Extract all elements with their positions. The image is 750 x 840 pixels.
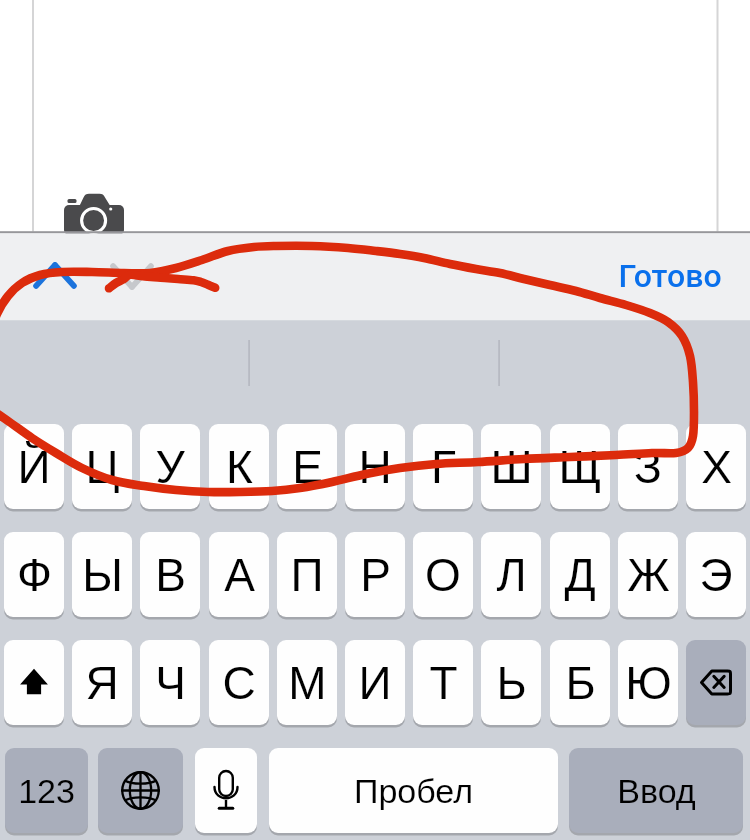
staticText: 123	[18, 772, 75, 810]
button[interactable]: Change language	[98, 748, 183, 833]
button[interactable]: Д	[550, 532, 610, 617]
button[interactable]: Л	[481, 532, 541, 617]
staticText: Д	[564, 549, 596, 600]
button[interactable]: Dictation	[195, 748, 257, 833]
button[interactable]: Ж	[618, 532, 678, 617]
staticText: Т	[429, 657, 458, 708]
staticText: Я	[85, 657, 119, 708]
staticText: Б	[565, 657, 596, 708]
button[interactable]: Я	[72, 640, 132, 725]
button[interactable]: И	[345, 640, 405, 725]
button[interactable]: 123	[5, 748, 88, 833]
button[interactable]: Щ	[550, 424, 610, 509]
button[interactable]: Ф	[4, 532, 64, 617]
button[interactable]: С	[209, 640, 269, 725]
staticText: У	[155, 441, 185, 492]
staticText: Ы	[82, 549, 123, 600]
button[interactable]: З	[618, 424, 678, 509]
staticText: Ввод	[617, 772, 696, 810]
staticText: О	[425, 549, 461, 600]
staticText: Х	[701, 441, 732, 492]
button[interactable]: Ввод	[569, 748, 743, 833]
staticText: Й	[17, 441, 51, 492]
button[interactable]: Ц	[72, 424, 132, 509]
staticText: Ч	[155, 657, 186, 708]
staticText: Е	[292, 441, 323, 492]
button[interactable]: Б	[550, 640, 610, 725]
staticText: Щ	[558, 441, 602, 492]
button[interactable]: Г	[413, 424, 473, 509]
button[interactable]: Н	[345, 424, 405, 509]
staticText: Э	[699, 549, 733, 600]
staticText: В	[155, 549, 186, 600]
button[interactable]: Х	[686, 424, 746, 509]
button[interactable]: Ч	[140, 640, 200, 725]
staticText: К	[226, 441, 253, 492]
staticText: Ж	[627, 549, 670, 600]
staticText: З	[634, 441, 662, 492]
button[interactable]: Shift	[4, 640, 64, 725]
button[interactable]: К	[209, 424, 269, 509]
staticText: Р	[360, 549, 391, 600]
button[interactable]: Ь	[481, 640, 541, 725]
staticText: М	[288, 657, 327, 708]
button[interactable]: Е	[277, 424, 337, 509]
staticText: Ф	[17, 549, 52, 600]
button[interactable]: О	[413, 532, 473, 617]
staticText: Ш	[490, 441, 533, 492]
button[interactable]: Ш	[481, 424, 541, 509]
button[interactable]: Й	[4, 424, 64, 509]
staticText: Ц	[85, 441, 120, 492]
staticText: Г	[431, 441, 456, 492]
button[interactable]: П	[277, 532, 337, 617]
button[interactable]: Пробел	[269, 748, 558, 833]
staticText: Ь	[496, 657, 527, 708]
staticText: Готово	[618, 257, 722, 295]
button[interactable]: М	[277, 640, 337, 725]
button[interactable]: Т	[413, 640, 473, 725]
staticText: П	[290, 549, 324, 600]
button[interactable]: Э	[686, 532, 746, 617]
staticText: Л	[496, 549, 527, 600]
button[interactable]: Готово	[605, 248, 734, 304]
button[interactable]: Backspace	[686, 640, 746, 725]
staticText: Н	[358, 441, 392, 492]
button[interactable]: У	[140, 424, 200, 509]
staticText: Ю	[625, 657, 672, 708]
button[interactable]: А	[209, 532, 269, 617]
button[interactable]: Р	[345, 532, 405, 617]
button[interactable]: Ы	[72, 532, 132, 617]
staticText: С	[222, 657, 256, 708]
staticText: А	[224, 549, 255, 600]
button[interactable]: В	[140, 532, 200, 617]
button[interactable]: Ю	[618, 640, 678, 725]
staticText: Пробел	[354, 772, 473, 810]
staticText: И	[358, 657, 392, 708]
